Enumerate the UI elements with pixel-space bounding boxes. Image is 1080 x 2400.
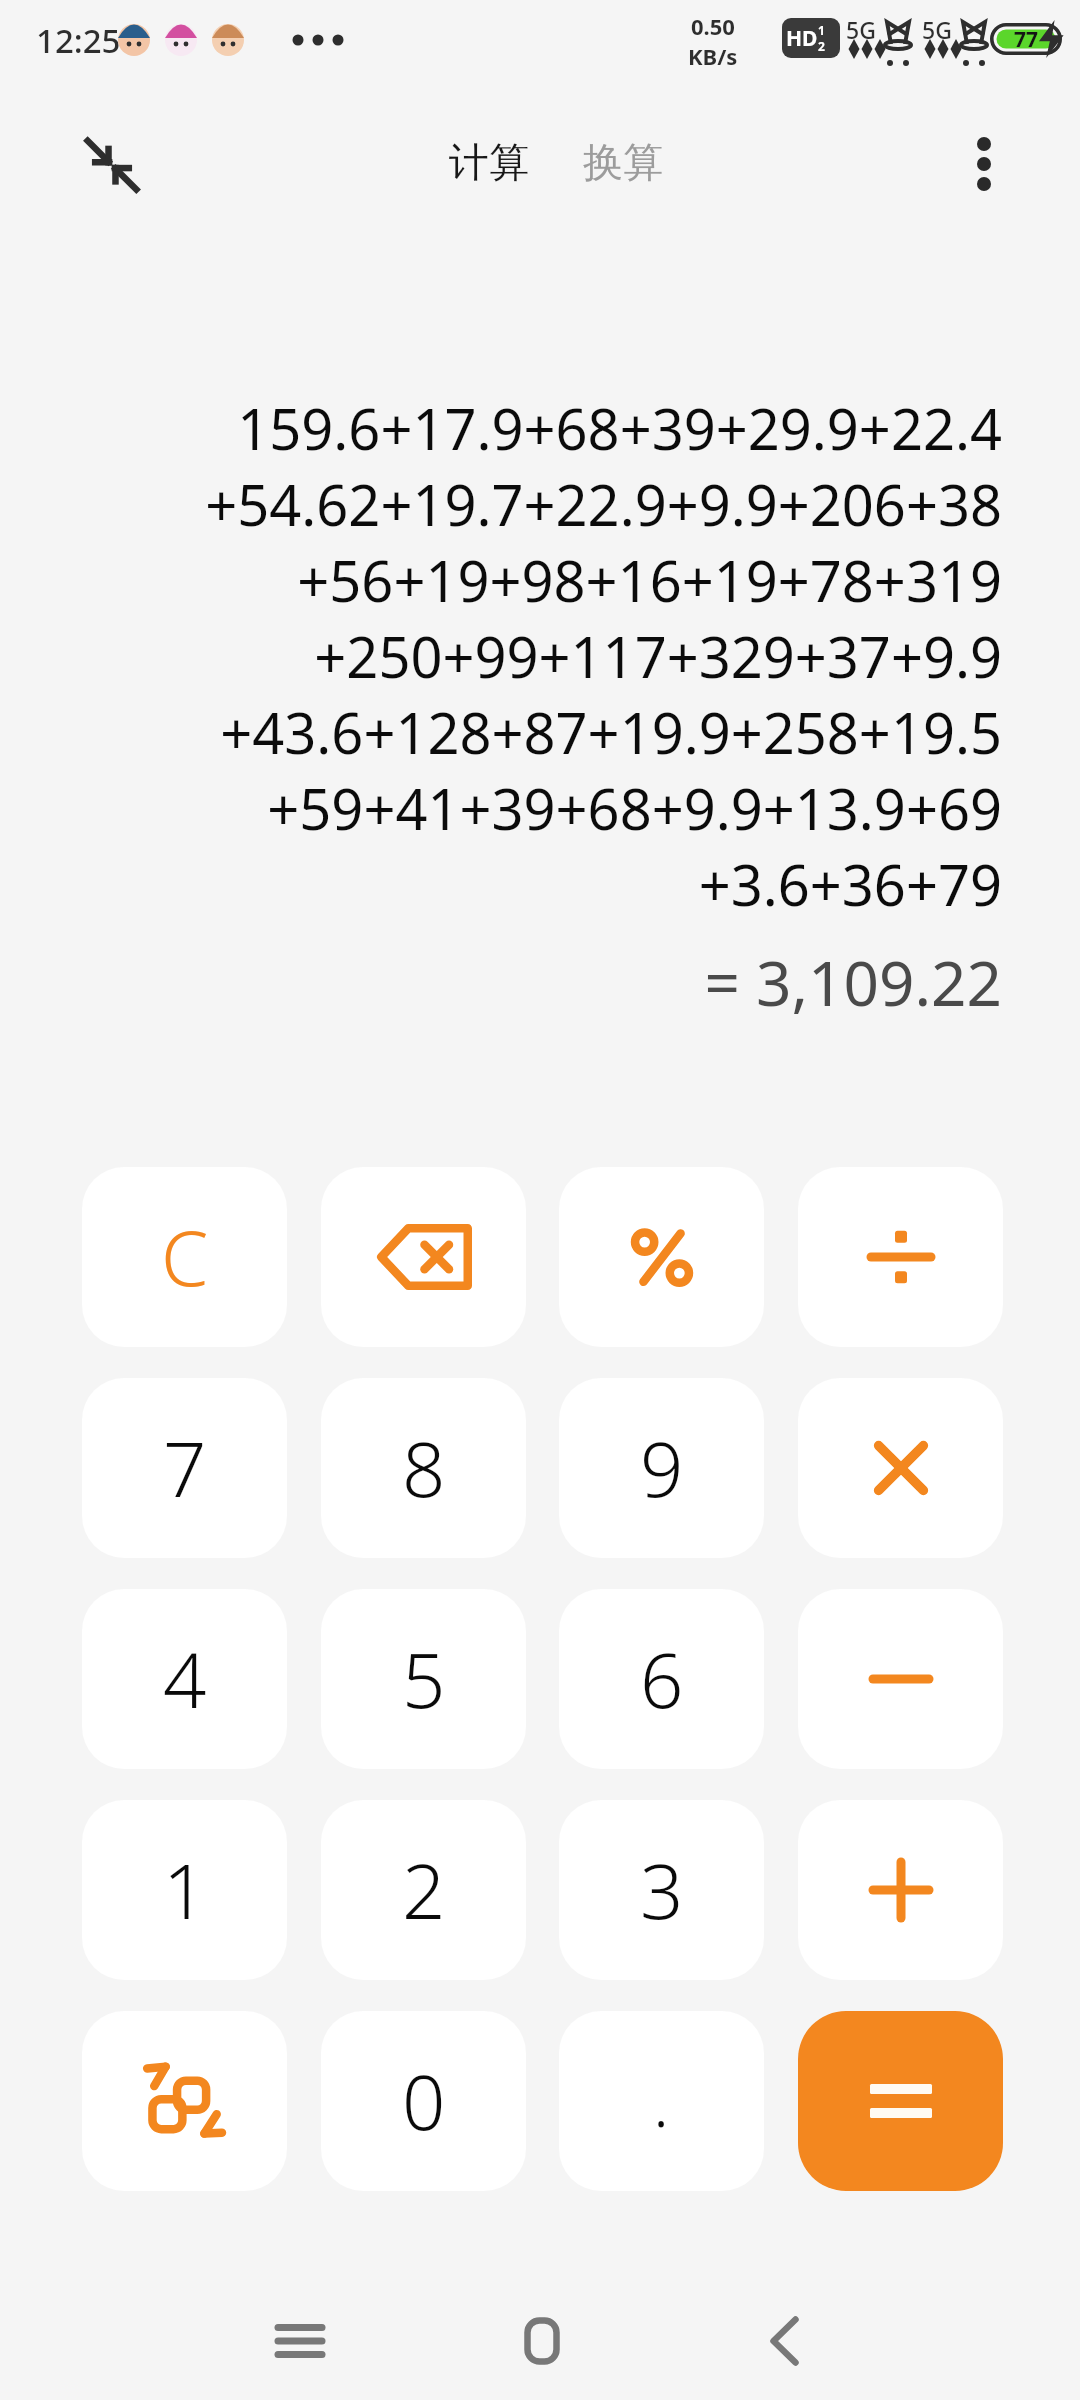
staticText: +250+99+117+329+37+9.9 (314, 618, 1002, 694)
staticText: 159.6+17.9+68+39+29.9+22.4 (237, 390, 1002, 466)
staticText: 77 (1014, 25, 1039, 54)
staticText: 3 (640, 1838, 684, 1942)
button[interactable]: More options (928, 124, 1040, 204)
staticText: 0.50 (691, 11, 735, 41)
button[interactable]: 8 (321, 1378, 526, 1558)
button[interactable]: Minus (798, 1589, 1003, 1769)
button[interactable]: Recent apps (240, 2301, 360, 2381)
staticText: C (161, 1205, 209, 1309)
button[interactable]: Equals (798, 2011, 1003, 2191)
staticText: +56+19+98+16+19+78+319 (297, 542, 1002, 618)
button[interactable]: . (559, 2011, 764, 2191)
button[interactable]: Plus (798, 1800, 1003, 1980)
button[interactable]: Scientific mode (82, 2011, 287, 2191)
button[interactable]: Backspace (321, 1167, 526, 1347)
staticText: = 3,109.22 (704, 940, 1002, 1024)
button[interactable]: 2 (321, 1800, 526, 1980)
button[interactable]: 3 (559, 1800, 764, 1980)
staticText: 12:25 (36, 18, 121, 63)
button[interactable]: 计算 (437, 127, 541, 197)
staticText: 7 (163, 1416, 207, 1520)
staticText: 4 (163, 1627, 207, 1731)
staticText: 6 (640, 1627, 684, 1731)
button[interactable]: 5 (321, 1589, 526, 1769)
button[interactable]: 6 (559, 1589, 764, 1769)
staticText: KB/s (688, 41, 738, 71)
staticText: 0 (402, 2049, 446, 2153)
button[interactable]: Multiply (798, 1378, 1003, 1558)
staticText: 5G (846, 14, 876, 45)
staticText: 换算 (583, 137, 663, 187)
staticText: 2 (402, 1838, 446, 1942)
button[interactable]: 0 (321, 2011, 526, 2191)
staticText: +43.6+128+87+19.9+258+19.5 (220, 694, 1002, 770)
button[interactable]: Home (482, 2301, 602, 2381)
staticText: 计算 (449, 137, 529, 187)
button[interactable]: 1 (82, 1800, 287, 1980)
staticText: HD (786, 24, 818, 53)
staticText: +59+41+39+68+9.9+13.9+69 (267, 770, 1002, 846)
staticText: . (653, 2056, 670, 2146)
button[interactable]: C (82, 1167, 287, 1347)
staticText: 5G (922, 14, 952, 45)
staticText: 1 (818, 22, 825, 38)
staticText: 5 (402, 1627, 446, 1731)
staticText: 9 (640, 1416, 684, 1520)
staticText: 2 (818, 38, 825, 54)
button[interactable]: 9 (559, 1378, 764, 1558)
staticText: 8 (402, 1416, 446, 1520)
button[interactable]: 4 (82, 1589, 287, 1769)
staticText: 1 (163, 1838, 207, 1942)
button[interactable]: 7 (82, 1378, 287, 1558)
button[interactable]: 换算 (571, 127, 675, 197)
staticText: +3.6+36+79 (698, 846, 1002, 922)
button[interactable]: Percent (559, 1167, 764, 1347)
staticText: +54.62+19.7+22.9+9.9+206+38 (205, 466, 1002, 542)
button[interactable]: Divide (798, 1167, 1003, 1347)
button[interactable]: Back (724, 2301, 844, 2381)
button[interactable]: Collapse (52, 126, 172, 202)
